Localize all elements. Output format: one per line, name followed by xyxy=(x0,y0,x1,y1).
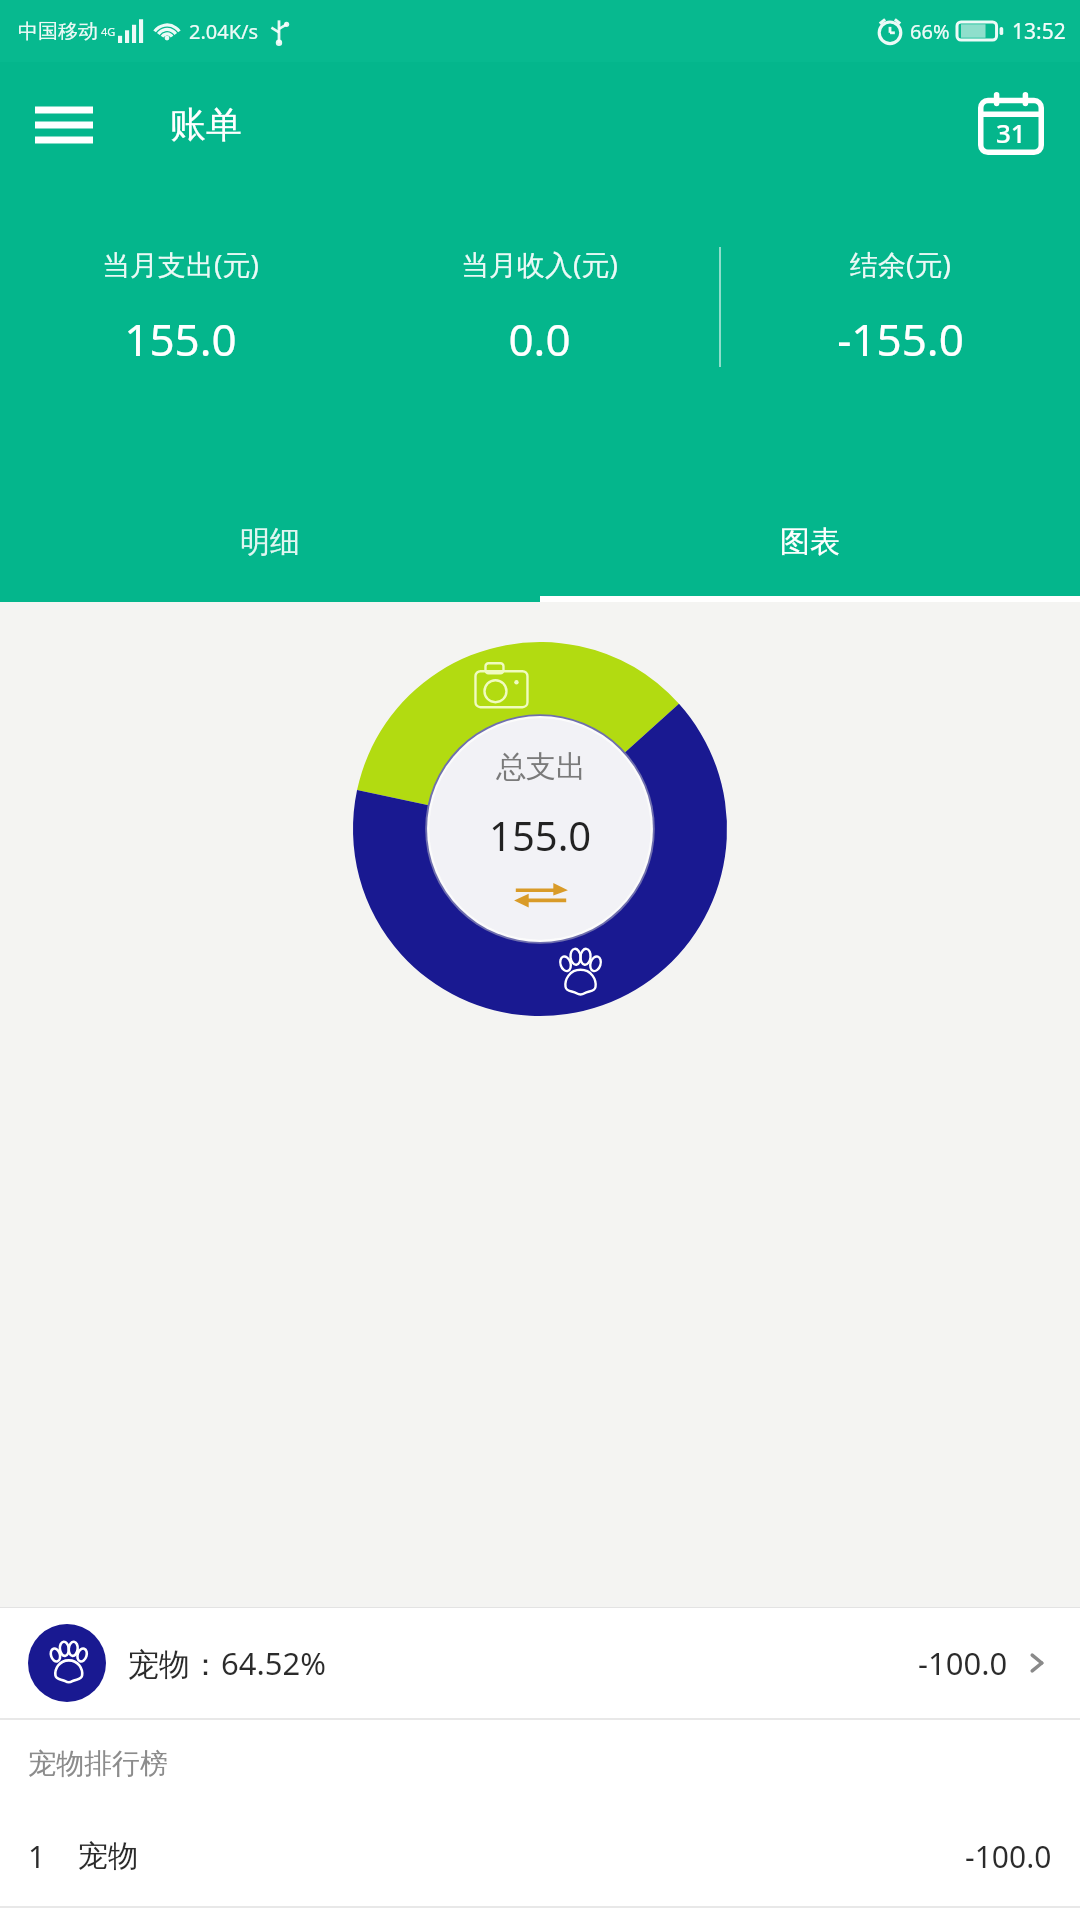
staticText: 账单 xyxy=(170,102,242,147)
staticText: 155.0 xyxy=(489,808,592,862)
button[interactable]: 明细 xyxy=(0,482,540,602)
button[interactable]: 宠物：64.52% xyxy=(0,1608,1080,1718)
staticText: 2.04K/s xyxy=(189,18,259,45)
staticText: 1 xyxy=(28,1836,46,1877)
staticText: 155.0 xyxy=(124,309,237,369)
staticText: 0.0 xyxy=(508,309,571,369)
staticText: 66% xyxy=(910,18,950,45)
button[interactable]: Menu xyxy=(30,91,98,159)
staticText: 总支出 xyxy=(496,748,586,786)
staticText: 中国移动 xyxy=(18,19,98,44)
staticText: -155.0 xyxy=(837,309,964,369)
staticText: -100.0 xyxy=(965,1836,1052,1877)
button[interactable]: 1 xyxy=(0,1806,1080,1906)
staticText: 13:52 xyxy=(1012,17,1066,46)
staticText: 图表 xyxy=(780,523,840,561)
staticText: 当月收入(元) xyxy=(461,245,618,283)
staticText: 结余(元) xyxy=(850,245,951,283)
staticText: -100.0 xyxy=(918,1642,1008,1684)
staticText: 宠物：64.52% xyxy=(128,1642,326,1684)
staticText: 当月支出(元) xyxy=(102,245,259,283)
staticText: 明细 xyxy=(240,523,300,561)
button[interactable]: 图表 xyxy=(540,482,1080,602)
staticText: 宠物 xyxy=(78,1837,138,1875)
staticText: 31 xyxy=(996,115,1026,150)
button[interactable]: Calendar xyxy=(972,86,1050,164)
button[interactable]: Switch expense income xyxy=(511,880,571,910)
staticText: 宠物排行榜 xyxy=(28,1746,168,1781)
staticText: 4G xyxy=(101,24,116,39)
